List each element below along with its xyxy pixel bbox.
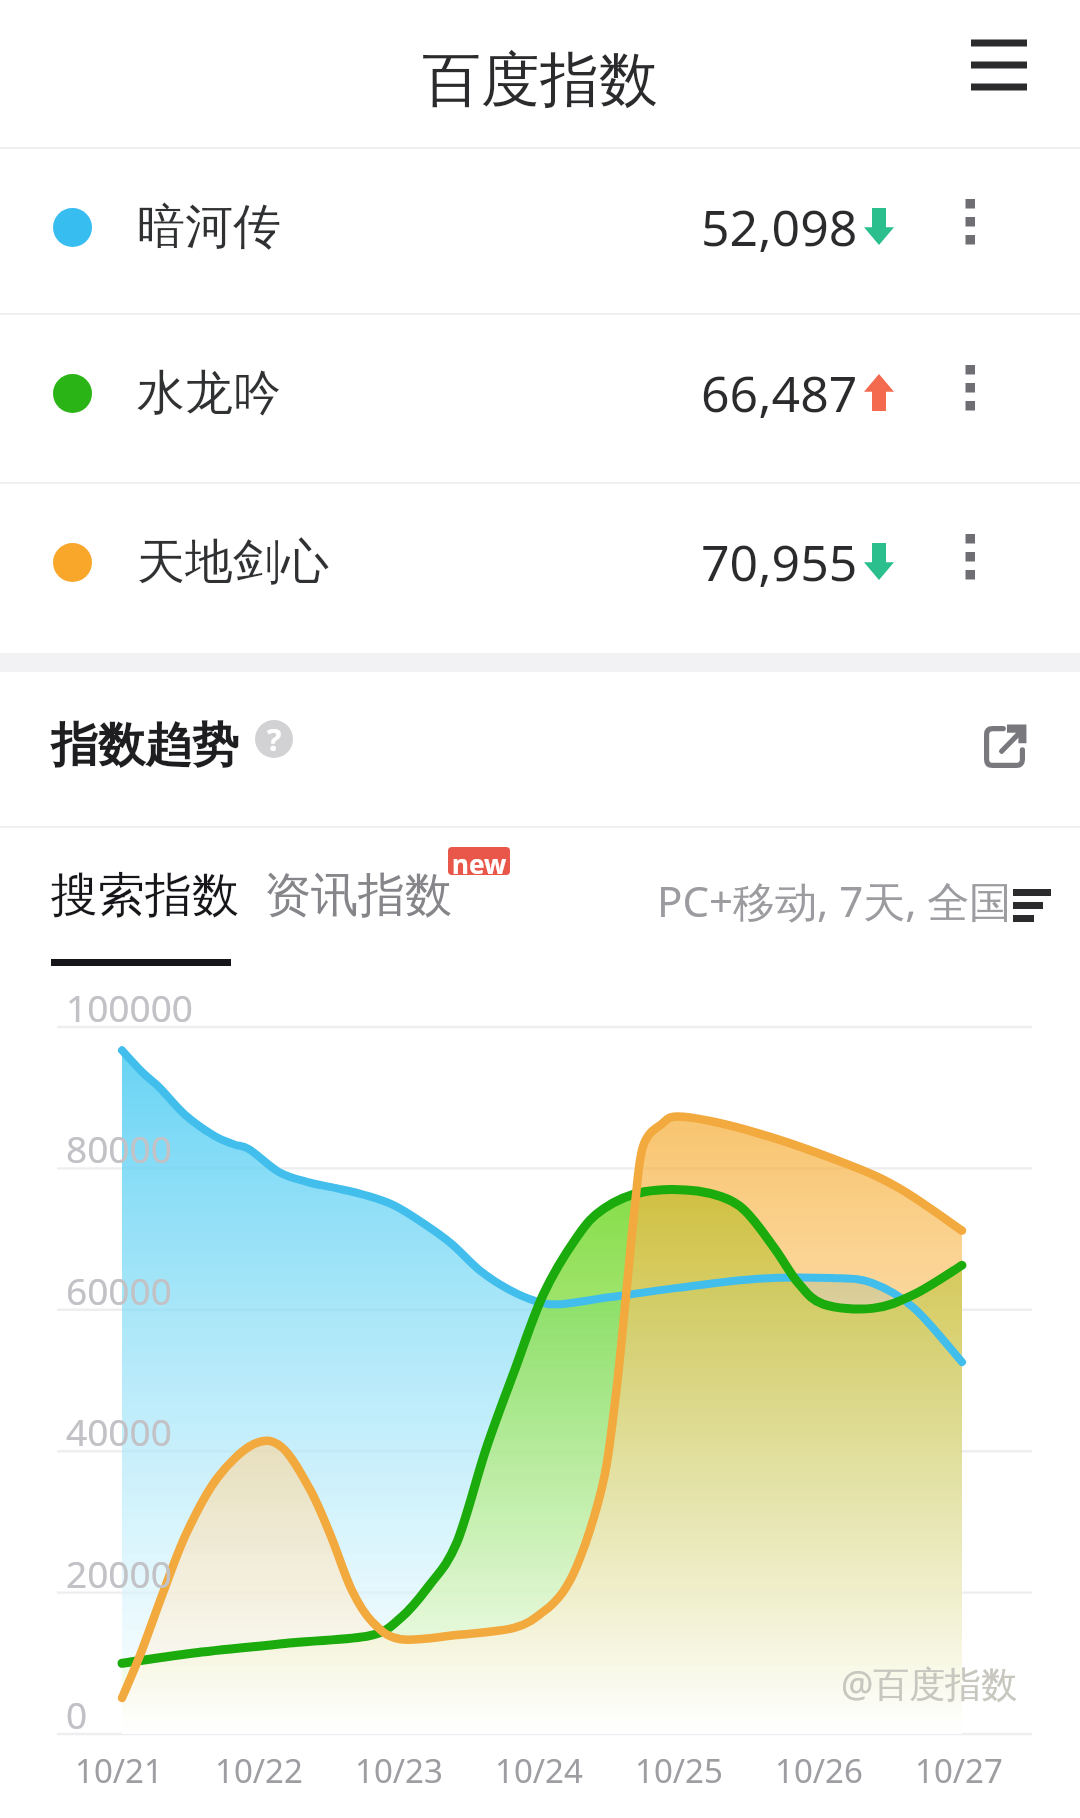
staticText: 0 bbox=[66, 1689, 88, 1739]
staticText: 70,955 bbox=[701, 528, 858, 596]
staticText: 10/21 bbox=[75, 1748, 163, 1793]
staticText: ? bbox=[267, 720, 282, 757]
staticText: 指数趋势 bbox=[51, 716, 239, 775]
button[interactable]: More options bbox=[932, 519, 1008, 595]
staticText: 10/25 bbox=[635, 1748, 723, 1793]
button[interactable]: 搜索指数 bbox=[51, 866, 239, 925]
staticText: 60000 bbox=[66, 1265, 172, 1315]
staticText: 100000 bbox=[66, 982, 193, 1032]
button[interactable]: 暗河传 bbox=[0, 148, 1080, 314]
staticText: 10/23 bbox=[355, 1748, 443, 1793]
staticText: 天地剑心 bbox=[137, 532, 329, 592]
staticText: 水龙吟 bbox=[137, 363, 281, 423]
staticText: 百度指数 bbox=[422, 43, 658, 117]
staticText: 40000 bbox=[66, 1406, 172, 1456]
button[interactable]: Open in new window bbox=[964, 707, 1044, 787]
staticText: 暗河传 bbox=[137, 197, 281, 257]
staticText: 20000 bbox=[66, 1548, 172, 1598]
staticText: PC+移动, 7天, 全国 bbox=[657, 872, 1012, 929]
staticText: 10/24 bbox=[495, 1748, 583, 1793]
button[interactable]: Help bbox=[255, 720, 293, 758]
button[interactable]: 天地剑心 bbox=[0, 483, 1080, 649]
button[interactable]: 资讯指数 bbox=[264, 866, 452, 925]
staticText: 52,098 bbox=[701, 193, 858, 261]
staticText: new bbox=[452, 847, 507, 874]
button[interactable]: More options bbox=[932, 350, 1008, 426]
staticText: 10/27 bbox=[915, 1748, 1003, 1793]
staticText: 10/26 bbox=[775, 1748, 863, 1793]
staticText: 80000 bbox=[66, 1123, 172, 1173]
staticText: 66,487 bbox=[701, 359, 858, 427]
button[interactable]: More options bbox=[932, 184, 1008, 260]
button[interactable]: 水龙吟 bbox=[0, 314, 1080, 480]
staticText: 10/22 bbox=[215, 1748, 303, 1793]
button[interactable]: Menu bbox=[943, 10, 1053, 120]
staticText: @百度指数 bbox=[841, 1659, 1018, 1708]
button[interactable]: PC+移动, 7天, 全国 bbox=[657, 872, 1056, 929]
